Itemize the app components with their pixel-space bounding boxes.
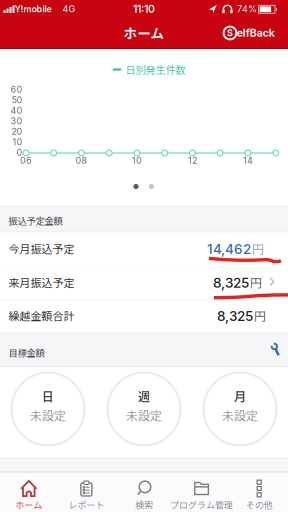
staticText: 週	[138, 387, 150, 405]
button[interactable]: その他	[230, 472, 288, 512]
staticText: 振込予定金額	[8, 214, 62, 227]
staticText: 12	[188, 155, 197, 166]
button[interactable]: 週	[106, 371, 181, 446]
staticText: 目標金額	[8, 346, 44, 359]
staticText: プログラム管理	[170, 498, 233, 511]
staticText: 日別発生件数	[125, 62, 185, 77]
button[interactable]: プログラム管理	[173, 472, 230, 512]
staticText: 74%	[237, 4, 257, 14]
button[interactable]: ホーム	[0, 472, 58, 512]
staticText: 50	[11, 95, 22, 105]
staticText: 月	[234, 387, 246, 405]
staticText: 10	[132, 155, 142, 166]
staticText: 円	[254, 307, 266, 324]
staticText: ホーム	[123, 23, 164, 42]
staticText: 14	[243, 155, 253, 166]
staticText: Y!mobile	[14, 4, 51, 14]
staticText: 40	[10, 105, 22, 116]
staticText: 来月振込予定	[8, 274, 74, 290]
staticText: 未設定	[222, 406, 258, 424]
staticText: 検索	[135, 498, 153, 511]
staticText: レポート	[68, 498, 104, 511]
staticText: 20	[11, 126, 22, 137]
staticText: 0	[16, 147, 22, 158]
button[interactable]: 月	[202, 371, 277, 446]
staticText: 14,462	[207, 241, 251, 257]
staticText: 円	[250, 273, 262, 291]
staticText: 11:10	[133, 3, 155, 15]
button[interactable]: 検索	[115, 472, 173, 512]
staticText: 円	[252, 240, 264, 257]
staticText: その他	[246, 498, 273, 511]
staticText: 10	[12, 137, 22, 147]
staticText: 08	[75, 155, 87, 166]
staticText: 今月振込予定	[8, 240, 74, 256]
staticText: 06	[20, 155, 32, 166]
staticText: 未設定	[126, 406, 162, 424]
button[interactable]: 今月振込予定	[0, 232, 288, 265]
button[interactable]: 来月振込予定	[0, 266, 288, 299]
staticText: 60	[10, 84, 22, 95]
staticText: 未設定	[30, 406, 66, 424]
button[interactable]: 日	[10, 371, 85, 446]
staticText: 日	[42, 387, 54, 405]
staticText: 30	[10, 116, 22, 126]
staticText: ホーム	[15, 498, 42, 511]
staticText: elfBack	[237, 27, 275, 39]
staticText: 8,325	[213, 275, 249, 291]
button[interactable]: レポート	[58, 472, 115, 512]
staticText: 8,325	[217, 308, 253, 324]
staticText: 4G	[62, 4, 75, 14]
staticText: S	[227, 28, 233, 38]
button[interactable]: 目標設定	[269, 343, 281, 357]
staticText: 繰越金額合計	[8, 307, 74, 323]
